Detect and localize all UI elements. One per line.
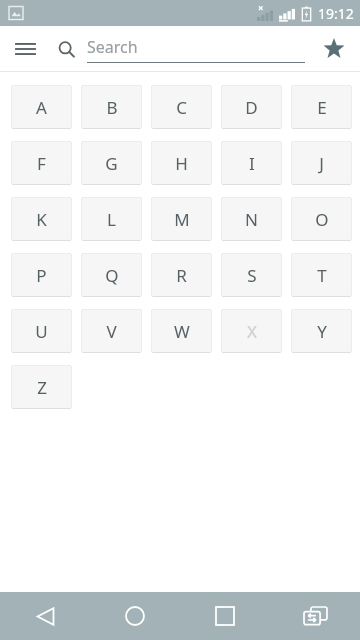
staticText: S	[247, 264, 257, 287]
button[interactable]: T	[291, 253, 352, 297]
button[interactable]: Favorites	[316, 31, 352, 67]
button[interactable]: R	[151, 253, 212, 297]
staticText: Search	[87, 36, 138, 58]
button[interactable]: Q	[81, 253, 142, 297]
button[interactable]: P	[11, 253, 72, 297]
staticText: R	[176, 264, 187, 287]
staticText: W	[174, 320, 190, 343]
button[interactable]: J	[291, 141, 352, 185]
button[interactable]: Switch apps	[291, 592, 339, 640]
button[interactable]: V	[81, 309, 142, 353]
button[interactable]: Y	[291, 309, 352, 353]
button[interactable]: L	[81, 197, 142, 241]
button[interactable]: H	[151, 141, 212, 185]
staticText: P	[36, 264, 47, 287]
button[interactable]: F	[11, 141, 72, 185]
staticText: I	[249, 152, 255, 175]
button[interactable]: Back	[21, 592, 69, 640]
staticText: T	[317, 264, 327, 287]
button[interactable]: I	[221, 141, 282, 185]
staticText: F	[37, 152, 46, 175]
button[interactable]: A	[11, 85, 72, 129]
staticText: L	[107, 208, 116, 231]
button[interactable]: D	[221, 85, 282, 129]
button[interactable]: M	[151, 197, 212, 241]
staticText: O	[315, 208, 329, 231]
button[interactable]: U	[11, 309, 72, 353]
staticText: U	[35, 320, 48, 343]
staticText: N	[245, 208, 258, 231]
staticText: B	[106, 96, 118, 119]
staticText: J	[319, 152, 324, 175]
button[interactable]: Z	[11, 365, 72, 409]
staticText: A	[36, 96, 47, 119]
staticText: D	[245, 96, 258, 119]
staticText: Y	[317, 320, 327, 343]
button[interactable]: E	[291, 85, 352, 129]
staticText: C	[176, 96, 187, 119]
button[interactable]: B	[81, 85, 142, 129]
staticText: 19:12	[318, 4, 354, 23]
button[interactable]: G	[81, 141, 142, 185]
staticText: V	[106, 320, 117, 343]
staticText: K	[36, 208, 47, 231]
button[interactable]: Menu	[8, 32, 42, 66]
staticText: Q	[105, 264, 119, 287]
staticText: X	[247, 320, 257, 343]
button[interactable]: C	[151, 85, 212, 129]
button[interactable]: N	[221, 197, 282, 241]
button[interactable]: Search	[58, 31, 305, 67]
staticText: E	[317, 96, 327, 119]
staticText: H	[175, 152, 188, 175]
button[interactable]: Recent apps	[201, 592, 249, 640]
button[interactable]: S	[221, 253, 282, 297]
staticText: M	[174, 208, 190, 231]
button[interactable]: O	[291, 197, 352, 241]
staticText: G	[105, 152, 118, 175]
button[interactable]: W	[151, 309, 212, 353]
staticText: Z	[37, 376, 47, 399]
button[interactable]: K	[11, 197, 72, 241]
button[interactable]: Home	[111, 592, 159, 640]
button: X	[221, 309, 282, 353]
